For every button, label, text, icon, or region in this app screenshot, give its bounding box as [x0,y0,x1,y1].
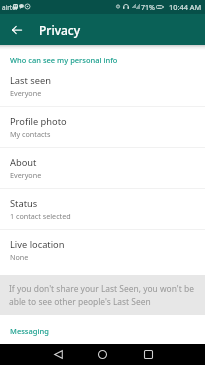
button[interactable]: Last seen [0,66,205,106]
staticText: If you don't share your Last Seen, you w… [9,283,201,308]
button[interactable]: Back [0,14,33,45]
button[interactable]: Status [0,189,205,229]
staticText: Profile photo [10,115,67,128]
staticText: Live location [10,238,65,251]
staticText: About [10,156,37,169]
staticText: Who can see my personal info [10,55,118,65]
staticText: airtel [2,3,18,12]
staticText: Privacy [39,22,81,38]
button[interactable]: Live location [0,230,205,270]
staticText: 71% [141,2,156,12]
staticText: My contacts [10,129,51,139]
button[interactable]: Back [53,344,63,365]
button[interactable]: Recent apps [143,344,153,365]
staticText: None [10,252,29,262]
staticText: Status [10,197,38,210]
staticText: Last seen [10,74,51,87]
button[interactable]: Home [97,344,107,365]
staticText: Everyone [10,88,42,98]
staticText: Messaging [10,326,49,336]
button[interactable]: About [0,148,205,188]
button[interactable]: Profile photo [0,107,205,147]
staticText: Everyone [10,170,42,180]
staticText: 10:44 AM [169,2,202,12]
staticText: 1 contact selected [10,211,71,221]
